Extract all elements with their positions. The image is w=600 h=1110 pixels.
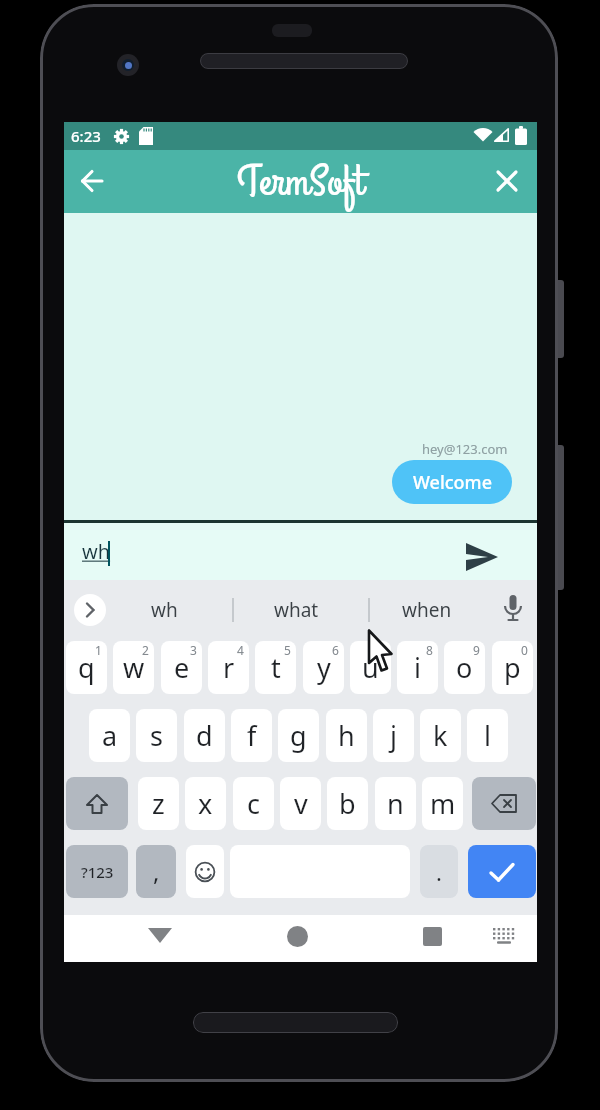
button[interactable]: i — [397, 641, 438, 694]
button[interactable]: a — [89, 709, 130, 762]
button[interactable]: w — [113, 641, 154, 694]
staticText: l — [484, 717, 491, 754]
button[interactable] — [466, 543, 498, 571]
staticText: j — [390, 717, 397, 754]
staticText: z — [152, 785, 165, 822]
button[interactable]: j — [373, 709, 414, 762]
staticText: g — [290, 717, 307, 754]
button[interactable]: g — [278, 709, 319, 762]
staticText: o — [456, 649, 473, 686]
button[interactable]: v — [280, 777, 321, 830]
staticText: e — [174, 649, 190, 686]
staticText: u — [362, 649, 379, 686]
staticText: t — [271, 649, 281, 686]
button[interactable]: z — [138, 777, 179, 830]
button[interactable] — [66, 777, 128, 830]
button[interactable]: o — [444, 641, 485, 694]
staticText: q — [78, 649, 95, 686]
staticText: c — [247, 785, 260, 822]
staticText: 0 — [521, 642, 528, 658]
staticText: ?123 — [81, 862, 114, 882]
staticText: k — [433, 717, 448, 754]
staticText: 8 — [426, 642, 433, 658]
staticText: . — [436, 857, 442, 887]
staticText: h — [338, 717, 355, 754]
button[interactable] — [64, 523, 537, 580]
button[interactable] — [186, 845, 224, 898]
staticText: p — [504, 649, 521, 686]
staticText: b — [339, 785, 356, 822]
staticText: hey@123.com — [422, 440, 508, 458]
staticText: x — [198, 785, 213, 822]
staticText: 9 — [473, 642, 480, 658]
button[interactable]: t — [255, 641, 296, 694]
button[interactable]: u — [350, 641, 391, 694]
staticText: 3 — [190, 642, 197, 658]
staticText: , — [153, 855, 160, 888]
button[interactable] — [287, 926, 308, 947]
button[interactable]: . — [420, 845, 458, 898]
button[interactable] — [468, 845, 536, 898]
button[interactable]: n — [375, 777, 416, 830]
staticText: s — [150, 717, 163, 754]
button[interactable] — [495, 169, 519, 193]
staticText: 6 — [332, 642, 339, 658]
staticText: Welcome — [413, 470, 492, 495]
staticText: n — [387, 785, 404, 822]
staticText: 1 — [95, 642, 102, 658]
button[interactable]: b — [327, 777, 368, 830]
staticText: what — [274, 597, 319, 623]
button[interactable]: d — [184, 709, 225, 762]
button[interactable] — [504, 595, 522, 625]
button[interactable]: e — [161, 641, 202, 694]
button[interactable]: l — [467, 709, 508, 762]
button[interactable] — [64, 150, 537, 213]
button[interactable] — [472, 777, 536, 830]
button[interactable]: m — [422, 777, 463, 830]
staticText: m — [430, 785, 456, 822]
button[interactable]: Welcome — [392, 460, 512, 504]
staticText: when — [402, 597, 452, 623]
staticText: i — [414, 649, 421, 686]
staticText: wh — [82, 538, 111, 565]
button[interactable]: q — [66, 641, 107, 694]
staticText: 4 — [237, 642, 244, 658]
button[interactable] — [78, 167, 106, 195]
button[interactable]: h — [326, 709, 367, 762]
button[interactable]: when — [397, 595, 457, 625]
staticText: y — [317, 649, 331, 686]
button[interactable]: f — [231, 709, 272, 762]
staticText: w — [123, 649, 145, 686]
button[interactable] — [423, 927, 442, 946]
button[interactable]: k — [420, 709, 461, 762]
staticText: 6:23 — [71, 126, 101, 146]
staticText: f — [247, 717, 257, 754]
button[interactable] — [148, 928, 172, 944]
button[interactable]: ?123 — [66, 845, 128, 898]
staticText: wh — [151, 597, 178, 623]
button[interactable]: , — [136, 845, 176, 898]
button[interactable]: x — [185, 777, 226, 830]
staticText: 7 — [379, 642, 386, 658]
button[interactable]: s — [136, 709, 177, 762]
staticText: TermSoft — [237, 152, 364, 212]
button[interactable]: r — [208, 641, 249, 694]
button[interactable] — [492, 927, 516, 945]
staticText: 2 — [142, 642, 149, 658]
button[interactable]: wh — [134, 595, 194, 625]
staticText: a — [102, 717, 118, 754]
button[interactable]: p — [492, 641, 533, 694]
staticText: 5 — [284, 642, 291, 658]
staticText: r — [223, 649, 235, 686]
staticText: v — [294, 785, 308, 822]
button[interactable]: what — [266, 595, 326, 625]
button[interactable] — [74, 594, 106, 626]
staticText: d — [196, 717, 213, 754]
button[interactable]: c — [233, 777, 274, 830]
button[interactable]: y — [303, 641, 344, 694]
